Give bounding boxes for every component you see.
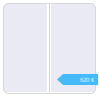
button[interactable]: 620 € [57,74,98,85]
staticText: 620 € [80,75,94,84]
